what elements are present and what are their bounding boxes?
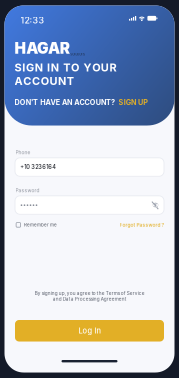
- staticText: +10 3236164: [20, 164, 56, 170]
- staticText: SIGN IN TO YOUR: [14, 61, 117, 74]
- button[interactable]: Forgot Password ?: [119, 222, 164, 228]
- staticText: HAGAR: [14, 39, 70, 58]
- staticText: ••••••: [20, 202, 38, 208]
- staticText: 12:33: [20, 15, 44, 26]
- staticText: Remember me: [24, 222, 57, 228]
- staticText: By signing up, you agree to the Terms of…: [34, 290, 144, 302]
- staticText: Phone: [15, 149, 30, 155]
- button[interactable]: Remember me: [16, 222, 57, 228]
- staticText: solutions: [70, 52, 85, 57]
- button[interactable]: Log In: [15, 320, 164, 341]
- staticText: ACCOUNT: [14, 74, 74, 87]
- button[interactable]: Show password: [152, 202, 159, 209]
- staticText: SIGN UP: [118, 98, 148, 107]
- staticText: DON'T HAVE AN ACCOUNT?: [15, 98, 115, 107]
- staticText: Log In: [78, 326, 100, 335]
- staticText: Password: [15, 187, 39, 193]
- staticText: Forgot Password ?: [119, 222, 164, 228]
- button[interactable]: SIGN UP: [118, 98, 148, 107]
